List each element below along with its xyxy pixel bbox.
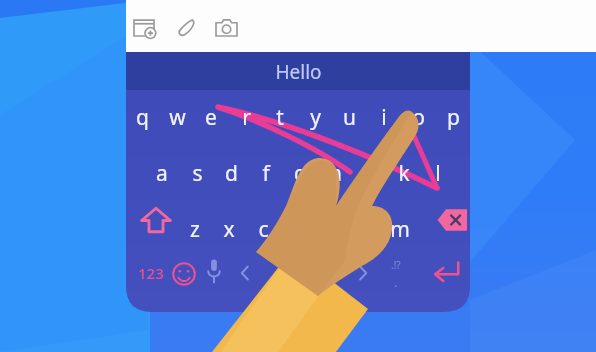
button[interactable]: r	[232, 102, 260, 132]
staticText: x	[223, 215, 235, 244]
staticText: d	[225, 159, 238, 188]
button[interactable]: i	[370, 102, 398, 132]
button[interactable]: a	[148, 158, 176, 188]
staticText: p	[447, 103, 460, 132]
staticText: w	[169, 103, 186, 132]
button[interactable]: o	[404, 102, 432, 132]
button[interactable]: q	[128, 102, 156, 132]
button[interactable]: t	[266, 102, 294, 132]
button[interactable]: k	[390, 158, 418, 188]
staticText: .!?	[391, 258, 401, 272]
button[interactable]: h	[321, 158, 349, 188]
staticText: z	[190, 215, 200, 244]
staticText: i	[381, 103, 387, 132]
button[interactable]: z	[181, 214, 209, 244]
button[interactable]: x	[215, 214, 243, 244]
button[interactable]: .	[389, 273, 403, 287]
button[interactable]: Move cursor left	[237, 264, 253, 282]
button[interactable]: Backspace	[437, 208, 467, 232]
staticText: .	[394, 273, 398, 287]
button[interactable]: y	[301, 102, 329, 132]
staticText: h	[329, 159, 342, 188]
staticText: Hello	[275, 59, 322, 85]
button[interactable]: p	[439, 102, 467, 132]
button[interactable]: g	[286, 158, 314, 188]
button[interactable]: j	[355, 158, 383, 188]
staticText: c	[258, 215, 269, 244]
button[interactable]: Hello	[126, 56, 470, 88]
button[interactable]: f	[252, 158, 280, 188]
button[interactable]: w	[163, 102, 191, 132]
staticText: r	[242, 103, 251, 132]
button[interactable]: Emoji	[172, 262, 196, 286]
button[interactable]: l	[424, 158, 452, 188]
button[interactable]: e	[197, 102, 225, 132]
button[interactable]: c	[249, 214, 277, 244]
staticText: 123	[138, 263, 164, 283]
button[interactable]: d	[217, 158, 245, 188]
staticText: t	[276, 103, 284, 132]
button[interactable]: .!?	[385, 256, 407, 274]
button[interactable]: 123	[134, 262, 168, 284]
button[interactable]: Voice input	[205, 256, 223, 290]
button[interactable]: Move cursor right	[355, 264, 371, 282]
staticText: y	[310, 103, 321, 132]
staticText: m	[390, 215, 410, 244]
staticText: j	[366, 159, 372, 188]
button[interactable]: Shift	[140, 206, 172, 234]
staticText: a	[156, 159, 168, 188]
button[interactable]: m	[386, 214, 414, 244]
staticText: o	[412, 103, 425, 132]
button[interactable]: s	[183, 158, 211, 188]
staticText: k	[398, 159, 410, 188]
staticText: e	[205, 103, 217, 132]
staticText: s	[192, 159, 203, 188]
staticText: f	[262, 159, 270, 188]
staticText: q	[136, 103, 149, 132]
staticText: l	[435, 159, 441, 188]
staticText: u	[343, 103, 356, 132]
button[interactable]: Enter	[429, 258, 463, 286]
staticText: g	[294, 159, 307, 188]
button[interactable]: u	[335, 102, 363, 132]
